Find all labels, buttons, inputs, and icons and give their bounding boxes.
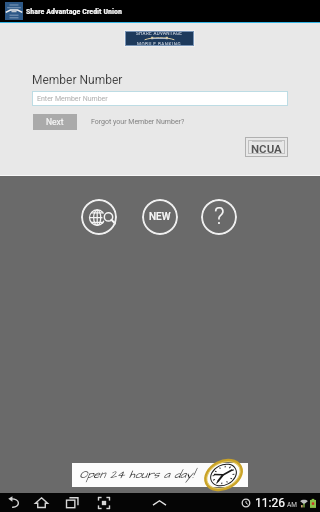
staticText: Forgot your Member Number?	[91, 118, 185, 126]
button[interactable]: NCUA	[248, 140, 285, 154]
button[interactable]: Back	[4, 493, 24, 512]
button[interactable]: Screenshot	[94, 493, 114, 512]
button[interactable]: Search	[81, 199, 117, 235]
other: Expand	[153, 500, 166, 506]
button[interactable]: Share Advantage Mobile Banking	[125, 31, 194, 46]
staticText: Enter Member Number	[37, 95, 108, 103]
button[interactable]: Recent apps	[62, 493, 82, 512]
staticText: SHARE ADVANTAGE	[136, 31, 183, 36]
staticText: Share Advantage Credit Union	[26, 7, 122, 16]
button[interactable]: Next	[33, 114, 77, 130]
other: Wi-Fi	[300, 498, 308, 509]
staticText: Open 24 hours a day!	[79, 467, 194, 483]
staticText: NEW	[149, 211, 171, 223]
staticText: Next	[46, 117, 64, 127]
staticText: ?	[214, 203, 225, 230]
staticText: NCUA	[251, 142, 282, 155]
other: Battery	[310, 498, 316, 509]
staticText: MOBILE BANKING	[137, 42, 182, 47]
other: Alarm set	[241, 498, 251, 508]
button[interactable]: Home	[31, 493, 51, 512]
button[interactable]: New	[142, 199, 178, 235]
staticText: 11:26	[255, 496, 285, 510]
staticText: AM	[287, 501, 297, 509]
button[interactable]: Forgot your Member Number?	[91, 114, 185, 130]
staticText: Member Number	[32, 73, 123, 87]
button[interactable]: Enter Member Number	[32, 91, 288, 106]
button[interactable]: Open 24 hours a day advertisement	[72, 463, 248, 487]
button[interactable]: Help	[201, 199, 237, 235]
